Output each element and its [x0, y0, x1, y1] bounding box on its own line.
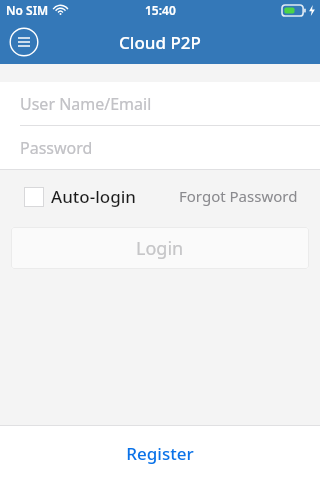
staticText: Register — [126, 442, 194, 465]
staticText: User Name/Email — [20, 93, 152, 115]
button[interactable]: Register — [110, 436, 210, 471]
button[interactable]: Login — [11, 227, 309, 269]
staticText: No SIM — [6, 2, 49, 18]
staticText: 15:40 — [145, 2, 176, 18]
button[interactable]: User Name/Email — [0, 82, 320, 125]
staticText: Login — [136, 236, 184, 261]
staticText: Cloud P2P — [119, 31, 201, 54]
button[interactable]: Menu — [8, 26, 40, 58]
button[interactable]: Forgot Password — [177, 182, 300, 210]
button[interactable]: Auto-login — [24, 185, 136, 208]
staticText: Password — [20, 137, 93, 159]
staticText: Auto-login — [51, 185, 136, 208]
button[interactable]: Password — [0, 126, 320, 169]
staticText: Forgot Password — [179, 186, 298, 206]
